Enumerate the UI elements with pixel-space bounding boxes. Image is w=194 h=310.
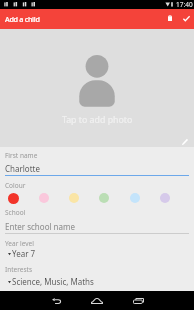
staticText: Add a child	[5, 14, 40, 24]
button[interactable]: Colour option 4	[93, 187, 115, 209]
staticText: Charlotte	[5, 163, 40, 174]
button[interactable]: Delete	[163, 8, 177, 28]
staticText: 17:40	[176, 0, 193, 9]
button[interactable]: First name	[0, 148, 194, 178]
button[interactable]: Save	[179, 8, 193, 28]
button[interactable]: Edit photo	[177, 134, 193, 150]
button[interactable]: Colour option 1	[2, 187, 24, 209]
staticText: First name	[5, 151, 38, 160]
staticText: Interests	[5, 265, 33, 274]
button[interactable]: Home	[86, 291, 107, 310]
staticText: Tap to add photo	[62, 114, 133, 126]
button[interactable]: School	[0, 205, 194, 235]
button[interactable]: Recents	[128, 291, 148, 310]
staticText: Colour	[5, 181, 26, 190]
button[interactable]: Tap to add photo	[0, 29, 194, 147]
button[interactable]: Interests	[0, 262, 194, 286]
button[interactable]: Colour option 2	[33, 187, 55, 209]
button[interactable]: Colour option 3	[63, 187, 85, 209]
button[interactable]: Colour option 5	[124, 187, 146, 209]
button[interactable]: Year level	[0, 236, 194, 260]
button[interactable]: Back	[46, 291, 66, 310]
staticText: Enter school name	[5, 221, 76, 232]
staticText: School	[5, 208, 26, 217]
button[interactable]: Colour option 6	[154, 187, 176, 209]
staticText: Year 7	[12, 248, 36, 259]
staticText: Science, Music, Maths	[12, 276, 94, 287]
staticText: Year level	[5, 239, 34, 248]
